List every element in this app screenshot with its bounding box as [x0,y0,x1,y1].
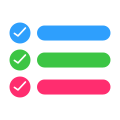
button[interactable]: Completed task [9,22,110,43]
button[interactable]: Completed task [9,76,110,97]
button[interactable]: Completed task [9,49,110,70]
